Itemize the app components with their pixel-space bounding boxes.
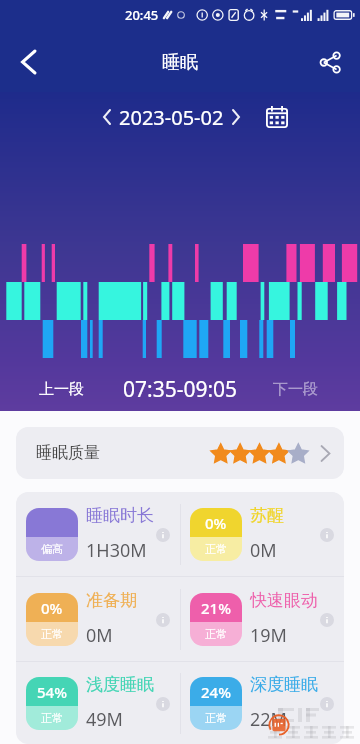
button[interactable]: Info (319, 696, 334, 711)
staticText: 准备期 (86, 590, 137, 611)
staticText: 正常 (205, 542, 227, 556)
staticText: 20:45 (125, 6, 159, 24)
staticText: 下一段 (273, 380, 318, 399)
staticText: 0% (205, 513, 227, 533)
staticText: 1H30M (86, 538, 147, 563)
staticText: 苏醒 (250, 505, 284, 526)
staticText: 22M (250, 707, 287, 732)
button[interactable]: Info (319, 612, 334, 627)
button[interactable]: Back (8, 42, 48, 82)
staticText: 2023-05-02 (119, 104, 224, 131)
staticText: 0M (250, 538, 277, 563)
button[interactable]: Info (319, 527, 334, 542)
button[interactable]: 54% (16, 662, 180, 744)
staticText: 07:35-09:05 (123, 375, 238, 404)
staticText: 正常 (41, 627, 63, 641)
button[interactable]: 21% (180, 577, 344, 661)
staticText: 24% (201, 682, 231, 702)
button[interactable]: Next day (225, 106, 247, 128)
staticText: 0% (41, 598, 63, 618)
button[interactable]: 0% (180, 492, 344, 576)
staticText: 正常 (205, 711, 227, 725)
staticText: 49M (86, 707, 123, 732)
button[interactable]: Info (155, 696, 170, 711)
button[interactable]: 上一段 (20, 373, 102, 405)
button[interactable]: Calendar (262, 102, 292, 132)
staticText: 睡眠时长 (86, 505, 154, 526)
button[interactable]: Info (155, 527, 170, 542)
button[interactable]: 0% (16, 577, 180, 661)
staticText: 54% (37, 682, 67, 702)
button[interactable]: 24% (180, 662, 344, 744)
button[interactable]: 下一段 (254, 373, 336, 405)
staticText: 19M (250, 623, 287, 648)
staticText: 睡眠质量 (36, 443, 100, 463)
staticText: 浅度睡眠 (86, 674, 154, 695)
button[interactable]: Previous day (96, 106, 118, 128)
staticText: 0M (86, 623, 113, 648)
staticText: 上一段 (39, 380, 84, 399)
button[interactable]: Share (314, 46, 346, 78)
staticText: 正常 (205, 627, 227, 641)
staticText: 正常 (41, 711, 63, 725)
button[interactable]: Info (155, 612, 170, 627)
staticText: 21% (201, 598, 231, 618)
staticText: 深度睡眠 (250, 674, 318, 695)
button[interactable]: 偏高 (16, 492, 180, 576)
staticText: 快速眼动 (250, 590, 318, 611)
button[interactable]: 睡眠质量 (16, 427, 344, 479)
staticText: 睡眠 (162, 51, 198, 74)
staticText: 偏高 (41, 542, 63, 556)
